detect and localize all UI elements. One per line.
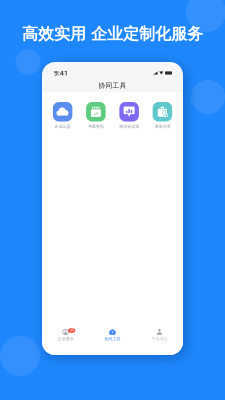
staticText: 移动会议室 — [119, 124, 139, 129]
staticText: 9:41 — [54, 69, 68, 77]
button[interactable]: 请假办理 — [146, 102, 179, 129]
staticText: 企业通讯 — [57, 336, 73, 341]
button[interactable]: 企业云盘 — [46, 102, 79, 129]
button[interactable]: 99 — [42, 329, 89, 341]
staticText: 企业云盘 — [55, 124, 71, 129]
button[interactable]: 个人中心 — [136, 329, 183, 341]
staticText: 协同工具 — [104, 336, 120, 341]
staticText: 个人中心 — [151, 336, 167, 341]
staticText: 考勤签到 — [88, 124, 104, 129]
staticText: 99 — [70, 328, 74, 333]
staticText: 高效实用 企业定制化服务 — [22, 24, 203, 44]
staticText: 协同工具 — [98, 81, 126, 90]
staticText: 请假办理 — [154, 124, 170, 129]
button[interactable]: 考勤签到 — [79, 102, 112, 129]
button[interactable]: 移动会议室 — [112, 102, 146, 129]
button[interactable]: 协同工具 — [89, 329, 136, 341]
